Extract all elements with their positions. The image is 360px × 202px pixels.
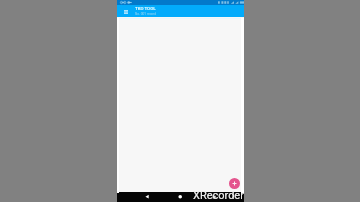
staticText: No. 001 record	[135, 12, 156, 16]
button[interactable]: Add	[229, 178, 240, 189]
button[interactable]: Back	[141, 192, 153, 202]
staticText: TKO TOOL	[135, 6, 156, 11]
staticText: XRecorder	[193, 189, 244, 202]
button[interactable]: Open navigation menu	[120, 6, 131, 17]
button[interactable]: Home	[174, 192, 186, 202]
button[interactable]: Recent apps	[208, 192, 220, 202]
